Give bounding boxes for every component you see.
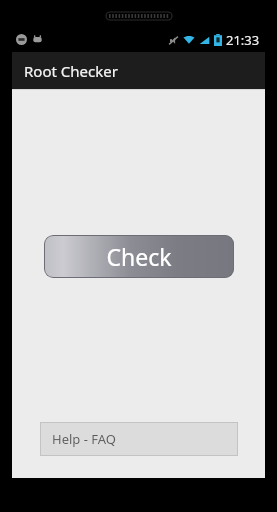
- button[interactable]: Help - FAQ: [40, 422, 238, 456]
- staticText: 21:33: [226, 31, 260, 49]
- staticText: Check: [106, 241, 172, 272]
- staticText: Help - FAQ: [52, 430, 116, 448]
- button[interactable]: Check: [44, 235, 234, 278]
- staticText: Root Checker: [24, 61, 118, 81]
